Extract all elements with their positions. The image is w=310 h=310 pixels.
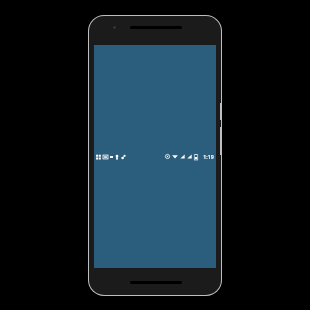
staticText: 1:19 <box>203 153 214 160</box>
